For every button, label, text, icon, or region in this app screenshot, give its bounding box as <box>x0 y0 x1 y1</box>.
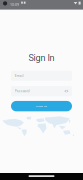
staticText: Email <box>15 74 24 78</box>
staticText: Password <box>15 89 30 93</box>
staticText: Sign In <box>28 53 54 63</box>
button[interactable]: Password <box>11 86 72 96</box>
staticText: SIGN IN <box>36 105 47 108</box>
staticText: 10:09 <box>10 3 19 7</box>
button[interactable]: Email <box>11 71 72 81</box>
button[interactable]: SIGN IN <box>11 101 72 111</box>
